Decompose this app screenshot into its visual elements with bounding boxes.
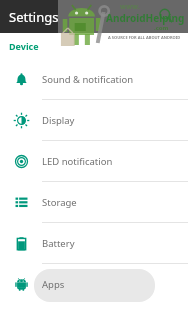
button[interactable]: Apps <box>0 264 188 305</box>
staticText: Display <box>42 114 75 127</box>
staticText: Storage <box>42 196 77 209</box>
staticText: Settings <box>9 8 59 26</box>
staticText: www. <box>120 2 140 12</box>
staticText: Device <box>9 40 39 52</box>
button[interactable]: LED notification <box>0 141 188 182</box>
staticText: .com <box>154 24 169 32</box>
button[interactable]: Battery <box>0 223 188 264</box>
staticText: Apps <box>42 278 65 291</box>
button[interactable]: Display <box>0 100 188 141</box>
staticText: Sound & notification <box>42 73 134 86</box>
staticText: Battery <box>42 237 75 250</box>
staticText: A SOURCE FOR ALL ABOUT ANDROID <box>108 35 181 40</box>
button[interactable]: Storage <box>0 182 188 223</box>
staticText: LED notification <box>42 155 113 168</box>
button[interactable]: Sound & notification <box>0 59 188 100</box>
staticText: AndroidHelping <box>106 11 185 25</box>
